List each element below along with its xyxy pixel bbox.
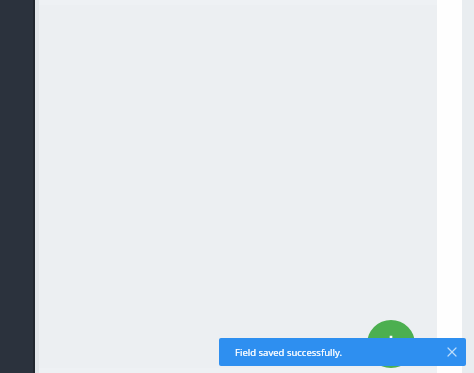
button[interactable]: Add <box>367 320 415 368</box>
button[interactable]: Navigation sidebar <box>0 0 35 373</box>
button[interactable]: Dismiss <box>442 342 462 362</box>
staticText: Field saved successfully. <box>235 346 342 359</box>
